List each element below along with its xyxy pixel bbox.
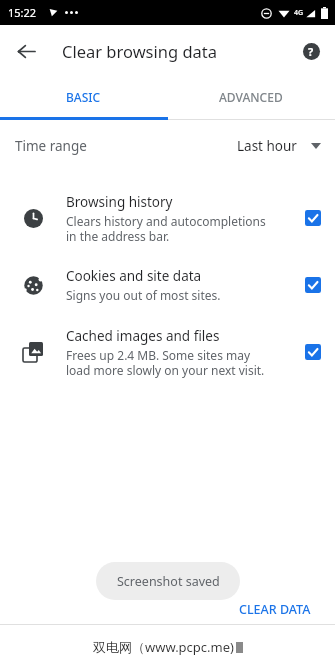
- staticText: Clears history and autocompletions in th…: [66, 213, 266, 244]
- button[interactable]: BASIC: [0, 77, 167, 117]
- staticText: Screenshot saved: [117, 573, 220, 590]
- button[interactable]: Cookies and site data: [0, 254, 335, 316]
- staticText: 4G: [294, 8, 304, 18]
- button[interactable]: Cached images and files: [0, 316, 335, 388]
- staticText: Cookies and site data: [66, 267, 202, 285]
- button[interactable]: Cookies and site data checkbox: [291, 254, 335, 316]
- staticText: Last hour: [237, 137, 297, 155]
- staticText: Cached images and files: [66, 327, 220, 345]
- button[interactable]: Browsing history: [0, 182, 335, 254]
- button[interactable]: Back: [8, 33, 44, 69]
- staticText: ADVANCED: [219, 89, 283, 105]
- staticText: ?: [308, 44, 314, 59]
- button[interactable]: ADVANCED: [167, 77, 335, 117]
- button[interactable]: Browsing history checkbox: [291, 182, 335, 254]
- staticText: 双电网（www.pcpc.me): [93, 638, 234, 656]
- staticText: Time range: [15, 137, 87, 155]
- staticText: Clear browsing data: [62, 40, 218, 62]
- staticText: CLEAR DATA: [239, 601, 311, 618]
- button[interactable]: Time range: [0, 120, 335, 172]
- button[interactable]: Help: [294, 34, 328, 68]
- staticText: BASIC: [66, 89, 101, 105]
- button[interactable]: Cached images and files checkbox: [291, 316, 335, 388]
- button[interactable]: CLEAR DATA: [233, 597, 317, 622]
- staticText: Browsing history: [66, 193, 173, 211]
- staticText: Signs you out of most sites.: [66, 287, 221, 303]
- staticText: Frees up 2.4 MB. Some sites may load mor…: [66, 347, 265, 378]
- staticText: 15:22: [8, 5, 37, 20]
